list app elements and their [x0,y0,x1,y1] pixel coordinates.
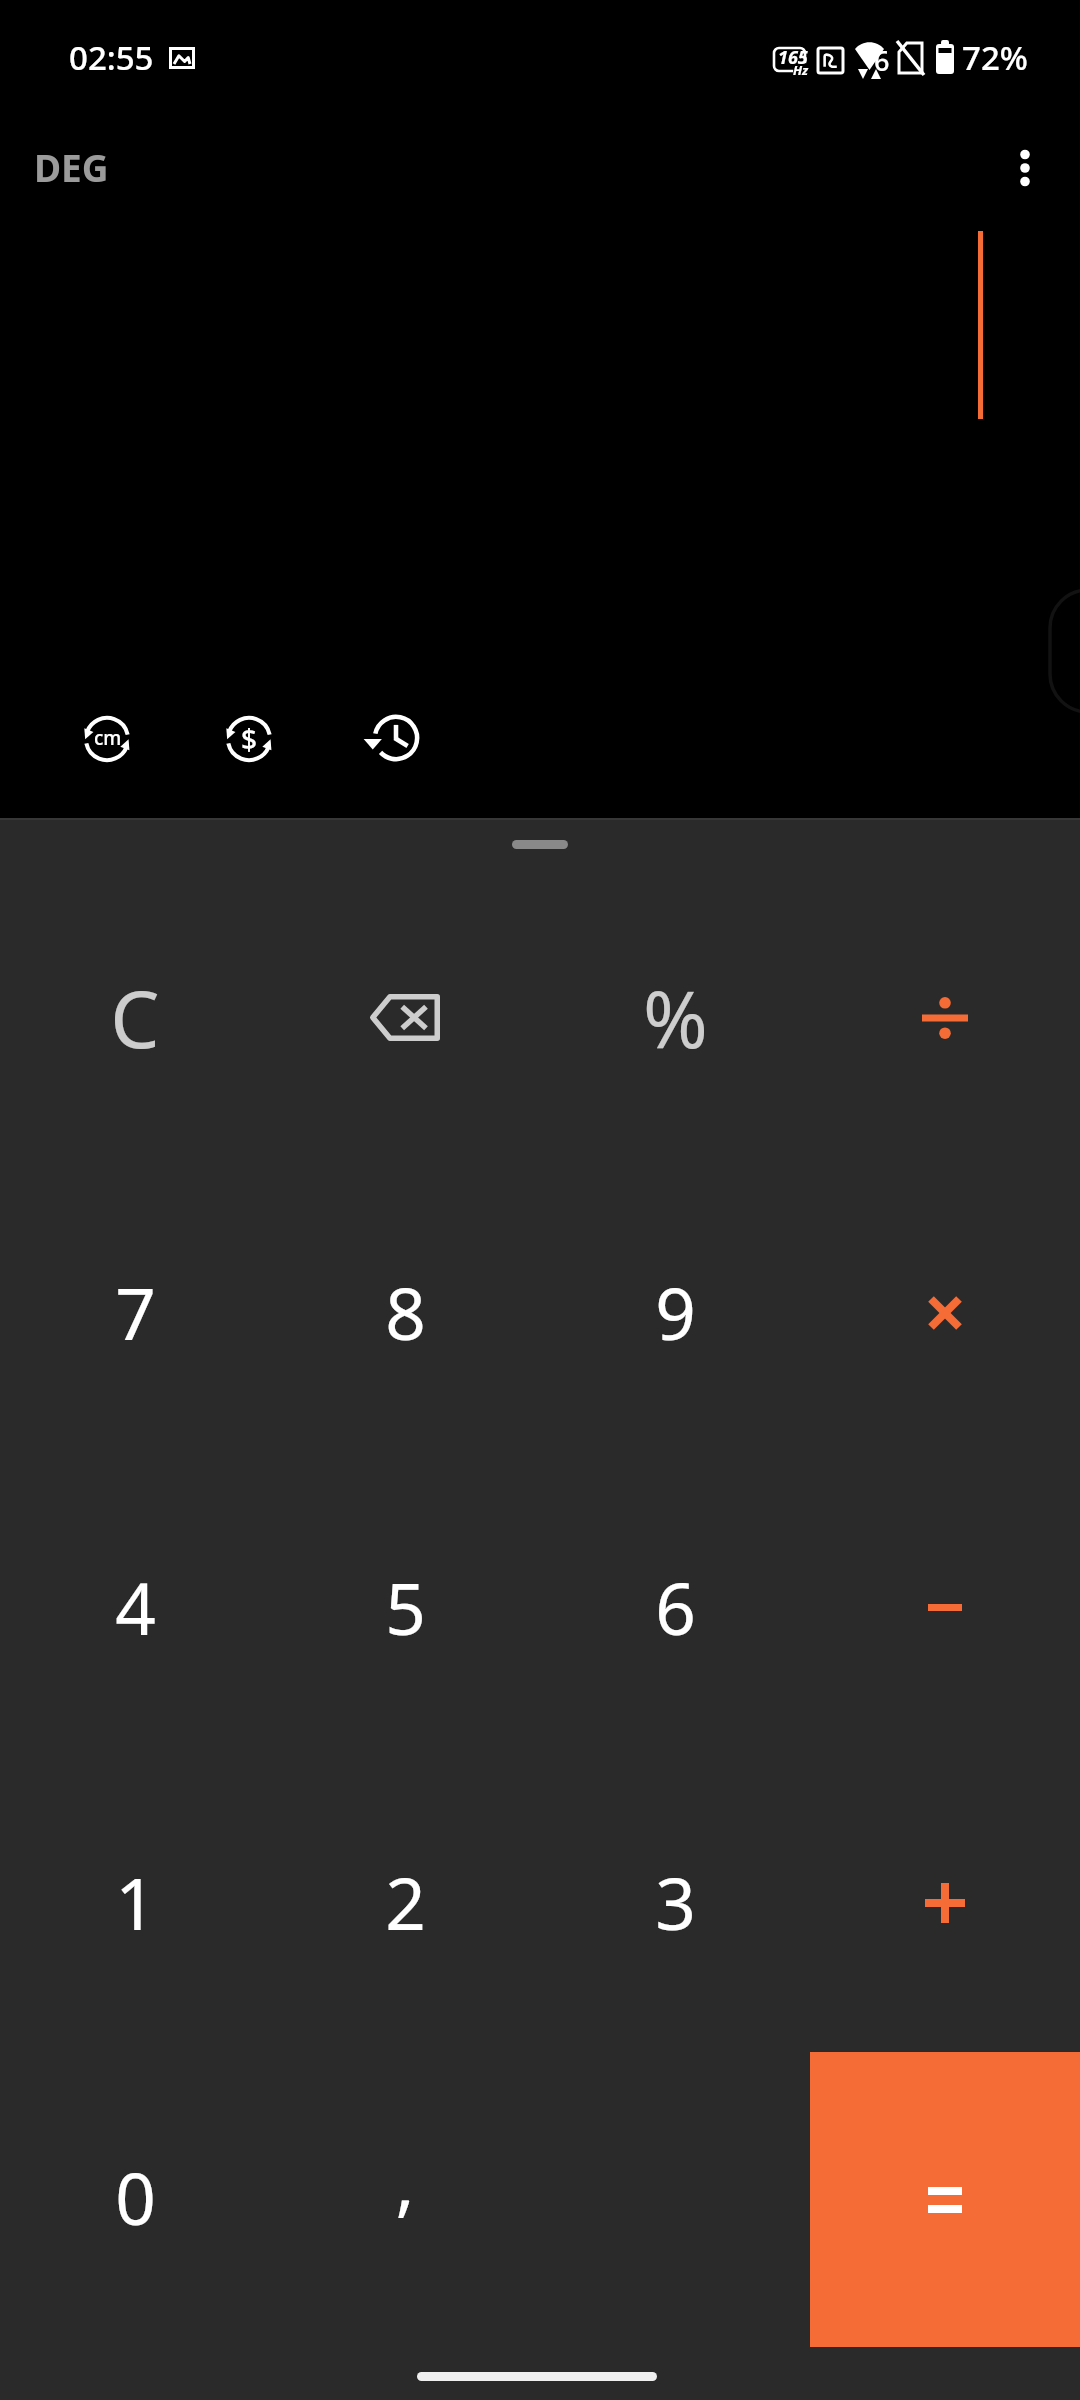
staticText: cm [94,725,122,751]
button[interactable]: Multiply [810,1165,1080,1460]
button[interactable]: DEG [32,142,111,192]
staticText: 0 [115,2149,156,2246]
button[interactable]: History [364,714,420,762]
staticText: , [395,2133,415,2230]
staticText: 1 [115,1854,156,1951]
button[interactable]: 7 [0,1165,270,1460]
staticText: 4 [115,1559,156,1656]
button[interactable]: Backspace [270,870,540,1165]
staticText: Hz [793,61,809,79]
button[interactable]: % [540,870,810,1165]
staticText: 165 [778,45,808,70]
button[interactable]: Unit converter [83,715,131,763]
staticText: 72% [962,35,1028,80]
button[interactable]: 5 [270,1460,540,1755]
button[interactable]: 4 [0,1460,270,1755]
button[interactable]: Equals [810,2052,1080,2347]
staticText: 6 [655,1559,696,1656]
staticText: 2 [385,1854,426,1951]
button[interactable]: 6 [540,1460,810,1755]
staticText: $ [241,720,258,758]
button[interactable]: C [0,870,270,1165]
staticText: 3 [655,1854,696,1951]
button[interactable]: Minus [810,1460,1080,1755]
staticText: 7 [115,1264,156,1361]
staticText: 02:55 [69,35,154,80]
staticText: 5 [385,1559,426,1656]
button[interactable]: , [270,2050,540,2345]
staticText: C [110,965,160,1071]
button[interactable]: 0 [0,2050,270,2345]
button[interactable]: 8 [270,1165,540,1460]
button[interactable]: More options [998,141,1052,195]
staticText: 8 [385,1264,426,1361]
staticText: 9 [655,1264,696,1361]
button[interactable]: 1 [0,1755,270,2050]
staticText: % [643,965,708,1071]
staticText: 6 [874,42,890,79]
button[interactable]: Currency converter [225,715,273,763]
button[interactable]: 2 [270,1755,540,2050]
button[interactable]: 9 [540,1165,810,1460]
button[interactable]: Divide [810,870,1080,1165]
button[interactable]: Plus [810,1755,1080,2050]
button[interactable]: 3 [540,1755,810,2050]
